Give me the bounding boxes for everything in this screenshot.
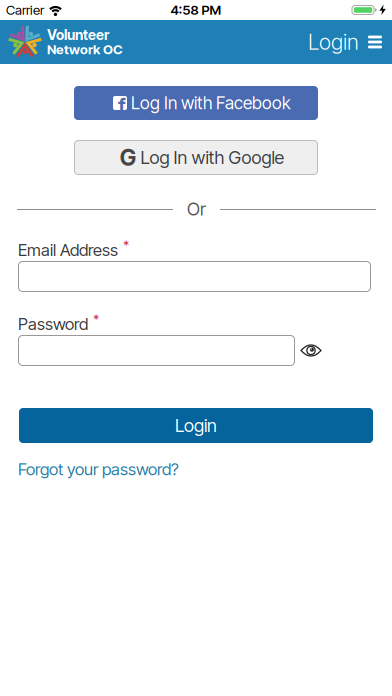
button[interactable]: [295, 343, 322, 358]
staticText: Email Address: [18, 240, 118, 260]
staticText: Login: [308, 29, 359, 55]
button[interactable]: Login: [308, 29, 359, 55]
button[interactable]: [18, 261, 371, 292]
button[interactable]: Forgot your password?: [18, 459, 179, 479]
staticText: Or: [187, 198, 206, 220]
staticText: Volunteer: [47, 26, 109, 43]
staticText: G: [119, 144, 136, 171]
staticText: Log In with Google: [140, 147, 284, 168]
button[interactable]: [359, 36, 392, 48]
button[interactable]: [18, 335, 295, 366]
button[interactable]: Login: [19, 408, 373, 443]
staticText: Forgot your password?: [18, 459, 179, 479]
staticText: *: [123, 238, 129, 254]
button[interactable]: G: [74, 140, 318, 175]
button[interactable]: f: [74, 86, 318, 120]
staticText: *: [93, 312, 99, 328]
staticText: Password: [18, 314, 88, 334]
staticText: Log In with Facebook: [131, 92, 291, 113]
staticText: Network OC: [47, 41, 123, 57]
staticText: 4:58 PM: [170, 2, 221, 18]
staticText: f: [118, 93, 126, 118]
staticText: Login: [175, 415, 217, 436]
staticText: Carrier: [6, 2, 44, 18]
